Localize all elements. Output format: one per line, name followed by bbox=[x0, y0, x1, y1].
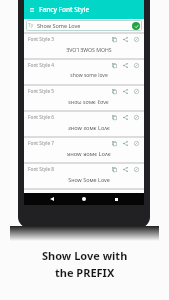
button[interactable]: Copy bbox=[110, 112, 119, 122]
button[interactable]: Font Style 6 bbox=[24, 110, 144, 136]
button[interactable]: Share bbox=[121, 138, 130, 148]
staticText: Font Style 6 bbox=[28, 114, 55, 121]
staticText: the PREFIX bbox=[55, 265, 115, 280]
button[interactable]: Share bbox=[121, 86, 130, 96]
button[interactable]: Menu bbox=[26, 4, 37, 15]
button[interactable]: Apply bbox=[132, 22, 140, 30]
button[interactable]: Font Style 5 bbox=[24, 84, 144, 110]
button[interactable]: Recents bbox=[111, 194, 121, 204]
button[interactable]: Copy bbox=[110, 60, 119, 70]
button[interactable]: WhatsApp bbox=[132, 34, 141, 44]
button[interactable]: Share bbox=[121, 164, 130, 174]
staticText: ᴚнow ᴚoмє Loʌє bbox=[67, 150, 111, 158]
staticText: show some love bbox=[70, 72, 108, 79]
button[interactable]: Share bbox=[121, 112, 130, 122]
staticText: ѕнσω ѕσмє ℓσνє bbox=[68, 98, 109, 105]
button[interactable]: Copy bbox=[110, 86, 119, 96]
staticText: Fancy Font Style bbox=[39, 5, 90, 14]
button[interactable]: Share bbox=[121, 190, 130, 200]
button[interactable]: Font Style 8 bbox=[24, 162, 144, 188]
button[interactable]: Font Style 9 bbox=[24, 188, 144, 205]
staticText: Font Style 3 bbox=[28, 36, 55, 43]
staticText: Show Love with bbox=[42, 248, 128, 263]
staticText: Show Sômé Lôvè bbox=[66, 200, 111, 202]
staticText: Font Style 9 bbox=[28, 192, 55, 199]
staticText: Font Style 7 bbox=[28, 140, 55, 147]
button[interactable]: WhatsApp bbox=[132, 60, 141, 70]
staticText: Font Style 5 bbox=[28, 88, 55, 95]
staticText: Font Style 8 bbox=[28, 166, 55, 173]
staticText: Ѕнow Ѕoмe Love bbox=[68, 176, 110, 183]
staticText: Font Style 4 bbox=[28, 62, 55, 69]
button[interactable]: Copy bbox=[110, 190, 119, 200]
button[interactable]: Copy bbox=[110, 138, 119, 148]
button[interactable]: WhatsApp bbox=[132, 164, 141, 174]
button[interactable]: Font Style 4 bbox=[24, 58, 144, 84]
button[interactable]: Share bbox=[121, 34, 130, 44]
staticText: Show Some Love bbox=[37, 22, 81, 29]
button[interactable]: WhatsApp bbox=[132, 112, 141, 122]
staticText: ƎVOꞀ ƎWOS MOHS bbox=[66, 46, 112, 53]
button[interactable]: Font Style 3 bbox=[24, 32, 144, 58]
staticText: Ty bbox=[28, 22, 34, 29]
button[interactable]: Copy bbox=[110, 164, 119, 174]
button[interactable]: WhatsApp bbox=[132, 138, 141, 148]
button[interactable]: Home bbox=[79, 194, 89, 204]
button[interactable]: Copy bbox=[110, 34, 119, 44]
button[interactable]: WhatsApp bbox=[132, 190, 141, 200]
button[interactable]: Share bbox=[121, 60, 130, 70]
button[interactable]: Back bbox=[47, 194, 57, 204]
button[interactable]: WhatsApp bbox=[132, 86, 141, 96]
button[interactable]: Font Style 7 bbox=[24, 136, 144, 162]
staticText: ƨнow ƨoмє Loʌє bbox=[68, 124, 110, 132]
